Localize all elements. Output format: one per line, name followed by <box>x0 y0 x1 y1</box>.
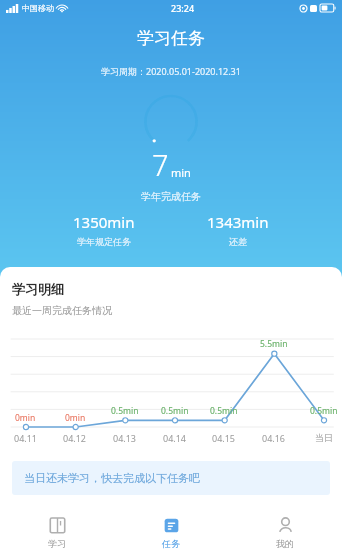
staticText: 04.16 <box>262 432 286 444</box>
staticText: 还差 <box>229 236 247 247</box>
staticText: 0.5min <box>210 405 238 417</box>
button[interactable]: 我的 <box>228 513 342 549</box>
staticText: 5.5min <box>260 338 288 350</box>
staticText: min <box>171 165 191 180</box>
staticText: 04.13 <box>113 432 137 444</box>
staticText: 0.5min <box>310 405 338 417</box>
staticText: 04.11 <box>14 432 38 444</box>
staticText: 当日还未学习，快去完成以下任务吧 <box>24 471 200 485</box>
staticText: 0.5min <box>111 405 139 417</box>
staticText: 学习周期：2020.05.01-2020.12.31 <box>101 65 241 77</box>
staticText: 23:24 <box>171 2 195 14</box>
staticText: 最近一周完成任务情况 <box>12 304 112 317</box>
staticText: 04.15 <box>212 432 236 444</box>
staticText: 我的 <box>276 538 294 549</box>
staticText: 学年规定任务 <box>77 236 131 247</box>
staticText: 0min <box>15 412 36 424</box>
staticText: 1350min <box>73 212 135 232</box>
button[interactable]: 当日还未学习，快去完成以下任务吧 <box>12 461 330 495</box>
button[interactable]: 任务 <box>114 513 228 549</box>
staticText: 7 <box>152 145 169 184</box>
staticText: 04.14 <box>163 432 187 444</box>
staticText: 学习明细 <box>12 281 64 297</box>
staticText: 04.12 <box>63 432 87 444</box>
staticText: 学习任务 <box>137 28 205 49</box>
staticText: 当日 <box>315 432 333 443</box>
staticText: 1343min <box>207 212 269 232</box>
button[interactable]: 学习 <box>0 513 114 549</box>
staticText: 0.5min <box>161 405 189 417</box>
staticText: 学习 <box>48 538 66 549</box>
staticText: 任务 <box>162 538 180 549</box>
staticText: 0min <box>65 412 86 424</box>
staticText: 中国移动 <box>22 3 54 13</box>
staticText: 学年完成任务 <box>141 190 201 203</box>
